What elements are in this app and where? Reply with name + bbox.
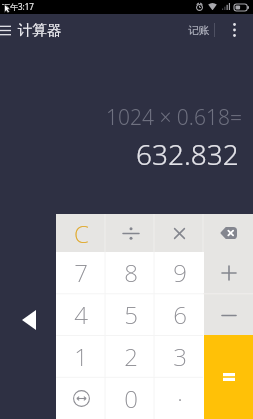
- button[interactable]: 4: [56, 293, 106, 335]
- staticText: 0: [124, 382, 138, 415]
- button[interactable]: Equals: [204, 335, 253, 419]
- button[interactable]: 0: [106, 377, 155, 419]
- staticText: 下午3:17: [2, 1, 34, 12]
- staticText: 6: [173, 298, 187, 331]
- staticText: 3: [173, 340, 187, 373]
- button[interactable]: 7: [56, 252, 106, 293]
- staticText: 632.832: [136, 135, 239, 173]
- button[interactable]: Swap: [56, 377, 106, 419]
- button[interactable]: Multiply: [155, 214, 204, 252]
- staticText: 2: [124, 340, 138, 373]
- button[interactable]: 5: [106, 293, 155, 335]
- button[interactable]: 记账: [183, 16, 214, 45]
- button[interactable]: Backspace: [204, 214, 253, 252]
- button[interactable]: C: [56, 214, 106, 252]
- staticText: 8: [124, 256, 138, 289]
- staticText: 1024 × 0.618=: [106, 103, 242, 132]
- button[interactable]: 6: [155, 293, 204, 335]
- button[interactable]: Show history panel: [0, 300, 56, 340]
- button[interactable]: Minus: [204, 293, 253, 335]
- button[interactable]: Plus: [204, 252, 253, 293]
- button[interactable]: Divide: [106, 214, 155, 252]
- staticText: 记账: [188, 24, 209, 37]
- button[interactable]: 9: [155, 252, 204, 293]
- staticText: 5: [124, 298, 138, 331]
- button[interactable]: 2: [106, 335, 155, 377]
- button[interactable]: 1: [56, 335, 106, 377]
- staticText: ·: [177, 382, 183, 415]
- staticText: 9: [173, 256, 187, 289]
- staticText: 7: [74, 256, 88, 289]
- staticText: 计算器: [18, 21, 62, 39]
- staticText: 4: [74, 298, 88, 331]
- staticText: 1: [74, 340, 88, 373]
- button[interactable]: 8: [106, 252, 155, 293]
- button[interactable]: 3: [155, 335, 204, 377]
- staticText: C: [74, 217, 89, 250]
- button[interactable]: ·: [155, 377, 204, 419]
- button[interactable]: Menu: [0, 14, 20, 46]
- button[interactable]: More options: [215, 14, 253, 46]
